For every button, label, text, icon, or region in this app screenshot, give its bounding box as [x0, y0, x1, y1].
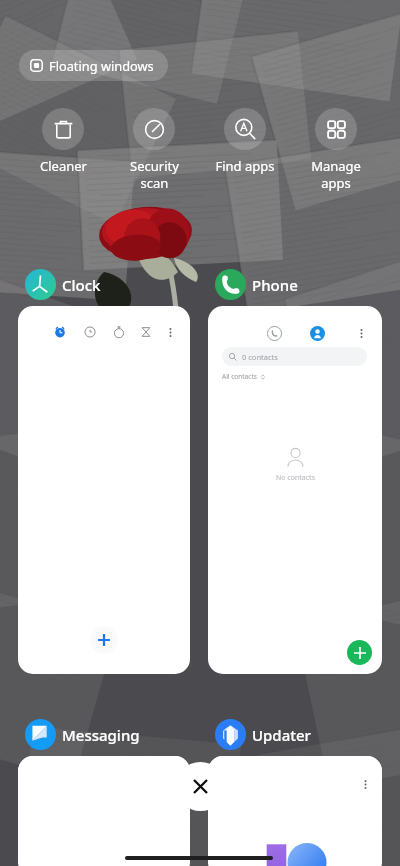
button[interactable]: Floating windows	[19, 50, 168, 81]
staticText: No contacts	[276, 473, 315, 483]
button[interactable]: Messaging	[25, 719, 140, 750]
button[interactable]: Find apps	[200, 108, 290, 175]
button[interactable]: Tab	[80, 322, 100, 342]
button[interactable]	[18, 756, 190, 866]
button[interactable]: Tab	[18, 306, 190, 674]
button[interactable]: Add contact	[347, 640, 372, 665]
button[interactable]: Add alarm	[90, 626, 118, 654]
staticText: Cleaner	[40, 157, 87, 175]
staticText: 0 contacts	[242, 352, 278, 362]
button[interactable]: Cleaner	[18, 108, 108, 175]
button[interactable]: Updater	[215, 719, 311, 750]
button[interactable]: Tab	[50, 322, 70, 342]
button[interactable]: All contacts	[222, 372, 266, 381]
staticText: All contacts	[222, 372, 257, 381]
staticText: Manage apps	[311, 157, 361, 192]
button[interactable]: Phone	[215, 269, 298, 300]
staticText: Floating windows	[49, 57, 154, 74]
button[interactable]: Close all	[176, 762, 225, 811]
button[interactable]: Clock	[25, 269, 101, 300]
button[interactable]: Recents	[208, 306, 382, 674]
button[interactable]: Tab	[136, 322, 156, 342]
button[interactable]: Tab	[109, 322, 129, 342]
staticText: Phone	[252, 275, 298, 295]
button[interactable]: More options	[358, 777, 372, 791]
staticText: Messaging	[62, 725, 140, 745]
button[interactable]: Contacts	[307, 323, 327, 343]
staticText: Clock	[62, 275, 101, 295]
button[interactable]: More options	[164, 326, 176, 338]
button[interactable]: More options	[208, 756, 382, 866]
button[interactable]: Security scan	[109, 108, 199, 192]
button[interactable]: More options	[351, 323, 371, 343]
button[interactable]: Manage apps	[291, 108, 381, 192]
staticText: Security scan	[130, 157, 179, 192]
button[interactable]: 0 contacts	[222, 347, 367, 366]
staticText: Updater	[252, 725, 311, 745]
staticText: Find apps	[215, 157, 275, 175]
button[interactable]: Recents	[264, 323, 284, 343]
